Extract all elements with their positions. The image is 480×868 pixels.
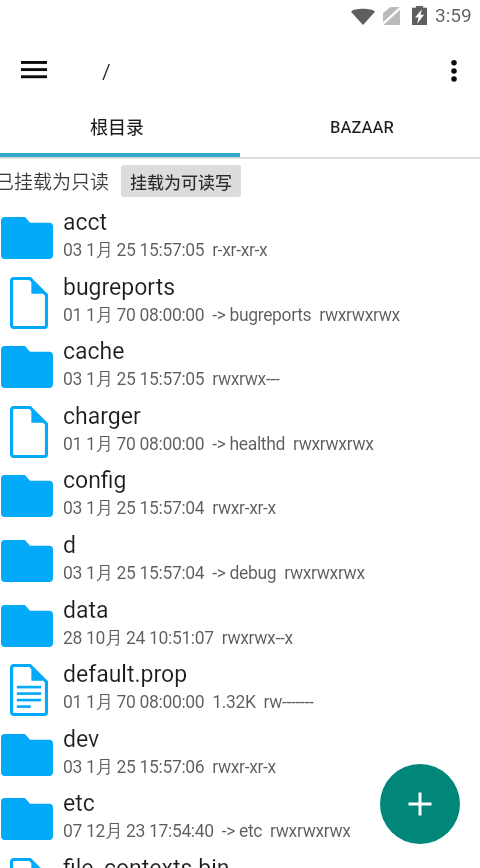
button[interactable]: Menu <box>0 41 71 97</box>
staticText: 挂载为可读写 <box>130 169 232 194</box>
staticText: 03 1月 25 15:57:05 rwxrwx--- <box>63 368 280 390</box>
staticText: config <box>63 467 127 494</box>
button[interactable]: etc <box>0 784 480 848</box>
staticText: 03 1月 25 15:57:06 rwxr-xr-x <box>63 756 276 778</box>
staticText: dev <box>63 726 100 753</box>
button[interactable]: bugreports <box>0 268 480 332</box>
button[interactable]: config <box>0 461 480 525</box>
staticText: 01 1月 70 08:00:00 1.32K rw------- <box>63 691 314 713</box>
button[interactable]: 挂载为可读写 <box>121 165 241 197</box>
button[interactable]: charger <box>0 397 480 461</box>
staticText: 已挂载为只读 <box>0 167 110 195</box>
staticText: BAZAAR <box>330 118 394 137</box>
button[interactable]: acct <box>0 203 480 267</box>
staticText: etc <box>63 790 95 817</box>
button[interactable]: d <box>0 526 480 590</box>
staticText: cache <box>63 338 125 365</box>
button[interactable]: BAZAAR <box>240 100 480 153</box>
staticText: acct <box>63 209 108 236</box>
staticText: 03 1月 25 15:57:04 rwxr-xr-x <box>63 497 276 519</box>
staticText: data <box>63 597 109 624</box>
button[interactable]: Add <box>380 764 460 844</box>
staticText: 03 1月 25 15:57:05 r-xr-xr-x <box>63 239 268 261</box>
button[interactable]: default.prop <box>0 655 480 719</box>
button[interactable]: 根目录 <box>0 100 240 153</box>
staticText: 28 10月 24 10:51:07 rwxrwx--x <box>63 627 293 649</box>
staticText: default.prop <box>63 661 188 688</box>
button[interactable]: dev <box>0 720 480 784</box>
staticText: 01 1月 70 08:00:00 -> healthd rwxrwxrwx <box>63 433 374 455</box>
staticText: d <box>63 532 76 559</box>
staticText: 03 1月 25 15:57:04 -> debug rwxrwxrwx <box>63 562 365 584</box>
staticText: 01 1月 70 08:00:00 -> bugreports rwxrwxrw… <box>63 304 400 326</box>
staticText: file_contexts.bin <box>63 855 230 868</box>
staticText: charger <box>63 403 141 430</box>
staticText: bugreports <box>63 274 176 301</box>
staticText: / <box>102 60 111 85</box>
button[interactable]: file_contexts.bin <box>0 849 480 868</box>
staticText: 3:59 <box>435 4 472 26</box>
staticText: 07 12月 23 17:54:40 -> etc rwxrwxrwx <box>63 820 351 842</box>
button[interactable]: cache <box>0 332 480 396</box>
button[interactable]: More options <box>430 47 477 94</box>
staticText: 根目录 <box>90 113 144 139</box>
button[interactable]: data <box>0 591 480 655</box>
